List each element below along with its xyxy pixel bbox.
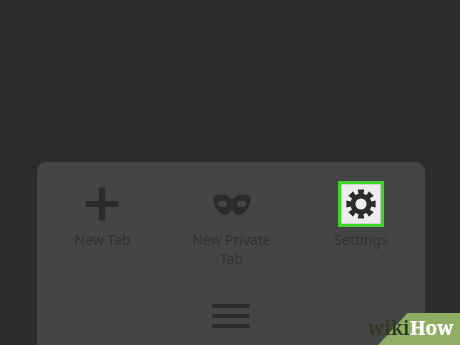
- staticText: wiki: [368, 315, 410, 341]
- staticText: Settings: [334, 230, 388, 249]
- button[interactable]: Menu: [196, 293, 266, 339]
- staticText: New Private Tab: [192, 230, 271, 268]
- staticText: How: [410, 315, 454, 341]
- other: New Tab: [85, 187, 119, 221]
- button[interactable]: New Tab: [37, 162, 167, 249]
- button[interactable]: Settings: [338, 181, 384, 227]
- other: New Private Tab: [213, 193, 251, 215]
- staticText: New Tab: [74, 230, 131, 249]
- button[interactable]: Settings: [296, 162, 425, 249]
- button[interactable]: New Private Tab: [167, 162, 296, 268]
